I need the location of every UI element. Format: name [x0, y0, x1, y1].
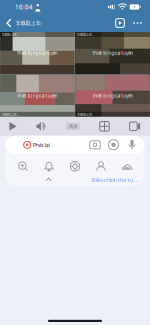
button[interactable]: Mute [26, 117, 57, 136]
button[interactable]: People detection [88, 158, 114, 175]
button[interactable]: Cloud storage [114, 158, 140, 175]
button[interactable]: Pan and tilt [62, 158, 88, 175]
button[interactable]: 车载取上车- [75, 32, 150, 74]
button[interactable]: Record video [104, 136, 122, 154]
button[interactable]: Cast screen [111, 14, 129, 32]
button[interactable]: 车载取上车- [0, 32, 75, 74]
staticText: Thiết bị ngoại tuyến [92, 93, 133, 99]
staticText: 车载取上车- [77, 112, 93, 117]
button[interactable]: Fullscreen [120, 117, 150, 136]
button[interactable]: Điều chỉnh thứ tự... [91, 175, 139, 185]
button[interactable]: Quality [57, 117, 89, 136]
button[interactable]: Talk [123, 136, 141, 154]
button[interactable]: Back [0, 14, 16, 32]
staticText: Thiết bị ngoại tuyến [17, 93, 58, 99]
staticText: 车载取上车- [16, 19, 43, 27]
button[interactable]: Layout [89, 117, 120, 136]
button[interactable]: Snapshot [86, 136, 104, 154]
staticText: Thiết bị ngoại tuyến [17, 50, 58, 56]
staticText: 高清 [69, 124, 77, 129]
staticText: Điều chỉnh thứ tự... [91, 176, 139, 184]
staticText: 车载取上车- [2, 32, 18, 37]
button[interactable]: Phát lại [5, 136, 67, 154]
button[interactable]: Collapse [39, 175, 57, 185]
staticText: 16:04 [15, 3, 33, 11]
button[interactable]: More options [129, 14, 146, 32]
staticText: 车载取上车- [2, 112, 18, 117]
staticText: 车载取上车- [77, 32, 93, 37]
button[interactable]: Alarm [36, 158, 62, 175]
staticText: Thiết bị ngoại tuyến [92, 50, 133, 56]
button[interactable]: 车载取上车- [0, 75, 75, 117]
staticText: Phát lại [32, 141, 49, 149]
button[interactable]: 车载取上车- [75, 75, 150, 117]
button[interactable]: Digital zoom [10, 158, 36, 175]
button[interactable]: Play [0, 117, 26, 136]
